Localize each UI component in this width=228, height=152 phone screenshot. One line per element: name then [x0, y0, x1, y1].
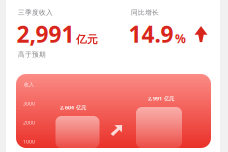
staticText: 14.9	[128, 19, 173, 49]
staticText: 2000	[23, 119, 35, 126]
staticText: 2,991 亿元	[148, 95, 174, 102]
staticText: %	[175, 31, 186, 47]
staticText: 高于预期	[18, 50, 46, 59]
staticText: 同比增长	[131, 8, 159, 17]
staticText: 收入	[24, 81, 34, 88]
staticText: 三季度收入	[18, 8, 53, 17]
staticText: 2,991	[16, 19, 74, 49]
staticText: 3000	[23, 100, 35, 107]
staticText: 2,604 亿元	[60, 104, 86, 111]
staticText: 1000	[23, 138, 35, 145]
staticText: 亿元	[76, 33, 98, 46]
